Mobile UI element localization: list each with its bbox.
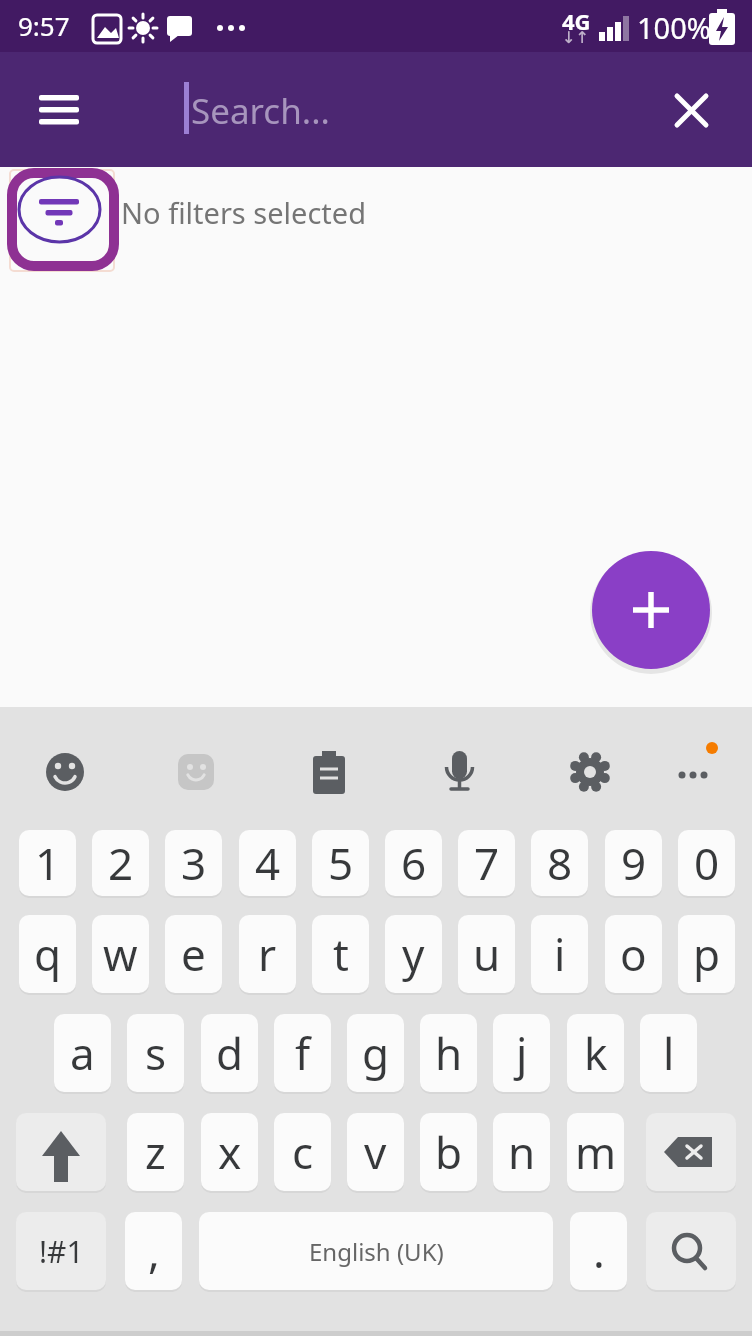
button[interactable] xyxy=(592,551,710,669)
button[interactable]: q xyxy=(19,915,76,993)
button[interactable]: z xyxy=(127,1113,184,1191)
staticText: x xyxy=(218,1122,242,1182)
button[interactable]: w xyxy=(92,915,149,993)
staticText: e xyxy=(181,924,206,984)
button[interactable]: i xyxy=(531,915,588,993)
staticText: 5 xyxy=(328,833,354,893)
staticText: 100% xyxy=(637,8,711,47)
button[interactable]: l xyxy=(640,1014,697,1092)
staticText: 1 xyxy=(35,833,61,893)
staticText: ↓↑ xyxy=(562,28,589,47)
staticText: Search... xyxy=(191,87,330,135)
button[interactable]: o xyxy=(605,915,662,993)
button[interactable]: 1 xyxy=(19,830,76,896)
button[interactable]: v xyxy=(347,1113,404,1191)
button[interactable] xyxy=(646,1113,736,1191)
button[interactable]: 2 xyxy=(92,830,149,896)
staticText: m xyxy=(575,1122,617,1182)
button[interactable]: d xyxy=(201,1014,258,1092)
button[interactable]: Search... xyxy=(160,66,620,154)
button[interactable]: 9 xyxy=(605,830,662,896)
staticText: p xyxy=(693,924,721,984)
staticText: u xyxy=(473,924,501,984)
button[interactable]: 0 xyxy=(678,830,735,896)
button[interactable] xyxy=(646,1212,736,1290)
button[interactable]: . xyxy=(570,1212,627,1290)
staticText: 9 xyxy=(621,833,647,893)
button[interactable]: t xyxy=(312,915,369,993)
button[interactable]: b xyxy=(420,1113,477,1191)
staticText: y xyxy=(402,924,425,984)
staticText: o xyxy=(620,924,647,984)
button[interactable]: f xyxy=(274,1014,331,1092)
button[interactable]: 8 xyxy=(531,830,588,896)
staticText: 6 xyxy=(401,833,427,893)
button[interactable]: !#1 xyxy=(16,1212,106,1290)
staticText: , xyxy=(148,1221,160,1281)
button[interactable]: e xyxy=(165,915,222,993)
staticText: j xyxy=(516,1023,528,1083)
staticText: k xyxy=(584,1023,608,1083)
button[interactable]: 4 xyxy=(239,830,296,896)
staticText: s xyxy=(145,1023,167,1083)
button[interactable]: c xyxy=(274,1113,331,1191)
button[interactable]: 5 xyxy=(312,830,369,896)
staticText: l xyxy=(663,1023,675,1083)
staticText: a xyxy=(70,1023,95,1083)
button[interactable]: j xyxy=(493,1014,550,1092)
button[interactable] xyxy=(7,168,119,271)
staticText: 3 xyxy=(181,833,207,893)
staticText: v xyxy=(364,1122,387,1182)
button[interactable]: 7 xyxy=(458,830,515,896)
button[interactable]: x xyxy=(201,1113,258,1191)
staticText: 2 xyxy=(108,833,134,893)
staticText: n xyxy=(508,1122,536,1182)
button[interactable]: s xyxy=(127,1014,184,1092)
button[interactable]: n xyxy=(493,1113,550,1191)
staticText: 9:57 xyxy=(18,8,70,43)
staticText: 4G xyxy=(562,6,591,36)
button[interactable]: p xyxy=(678,915,735,993)
button[interactable]: a xyxy=(54,1014,111,1092)
button[interactable]: h xyxy=(420,1014,477,1092)
button[interactable]: , xyxy=(125,1212,182,1290)
staticText: c xyxy=(292,1122,314,1182)
staticText: b xyxy=(435,1122,463,1182)
button[interactable] xyxy=(16,1113,106,1191)
staticText: 4 xyxy=(255,833,281,893)
staticText: !#1 xyxy=(39,1231,84,1272)
staticText: h xyxy=(435,1023,463,1083)
button[interactable]: u xyxy=(458,915,515,993)
staticText: g xyxy=(362,1023,390,1083)
staticText: t xyxy=(333,924,349,984)
staticText: d xyxy=(216,1023,244,1083)
staticText: 8 xyxy=(547,833,573,893)
staticText: r xyxy=(258,924,277,984)
button[interactable]: English (UK) xyxy=(199,1212,553,1290)
staticText: w xyxy=(103,924,138,984)
button[interactable]: y xyxy=(385,915,442,993)
button[interactable]: g xyxy=(347,1014,404,1092)
staticText: 7 xyxy=(474,833,500,893)
staticText: No filters selected xyxy=(121,193,366,232)
button[interactable] xyxy=(23,74,95,146)
button[interactable]: k xyxy=(567,1014,624,1092)
button[interactable]: 6 xyxy=(385,830,442,896)
button[interactable] xyxy=(655,74,727,146)
button[interactable]: m xyxy=(567,1113,624,1191)
staticText: q xyxy=(34,924,62,984)
staticText: z xyxy=(145,1122,166,1182)
staticText: i xyxy=(554,924,566,984)
button[interactable]: 3 xyxy=(165,830,222,896)
staticText: . xyxy=(593,1221,605,1281)
staticText: f xyxy=(295,1023,311,1083)
staticText: English (UK) xyxy=(309,1235,444,1268)
button[interactable]: r xyxy=(239,915,296,993)
staticText: 0 xyxy=(694,833,720,893)
